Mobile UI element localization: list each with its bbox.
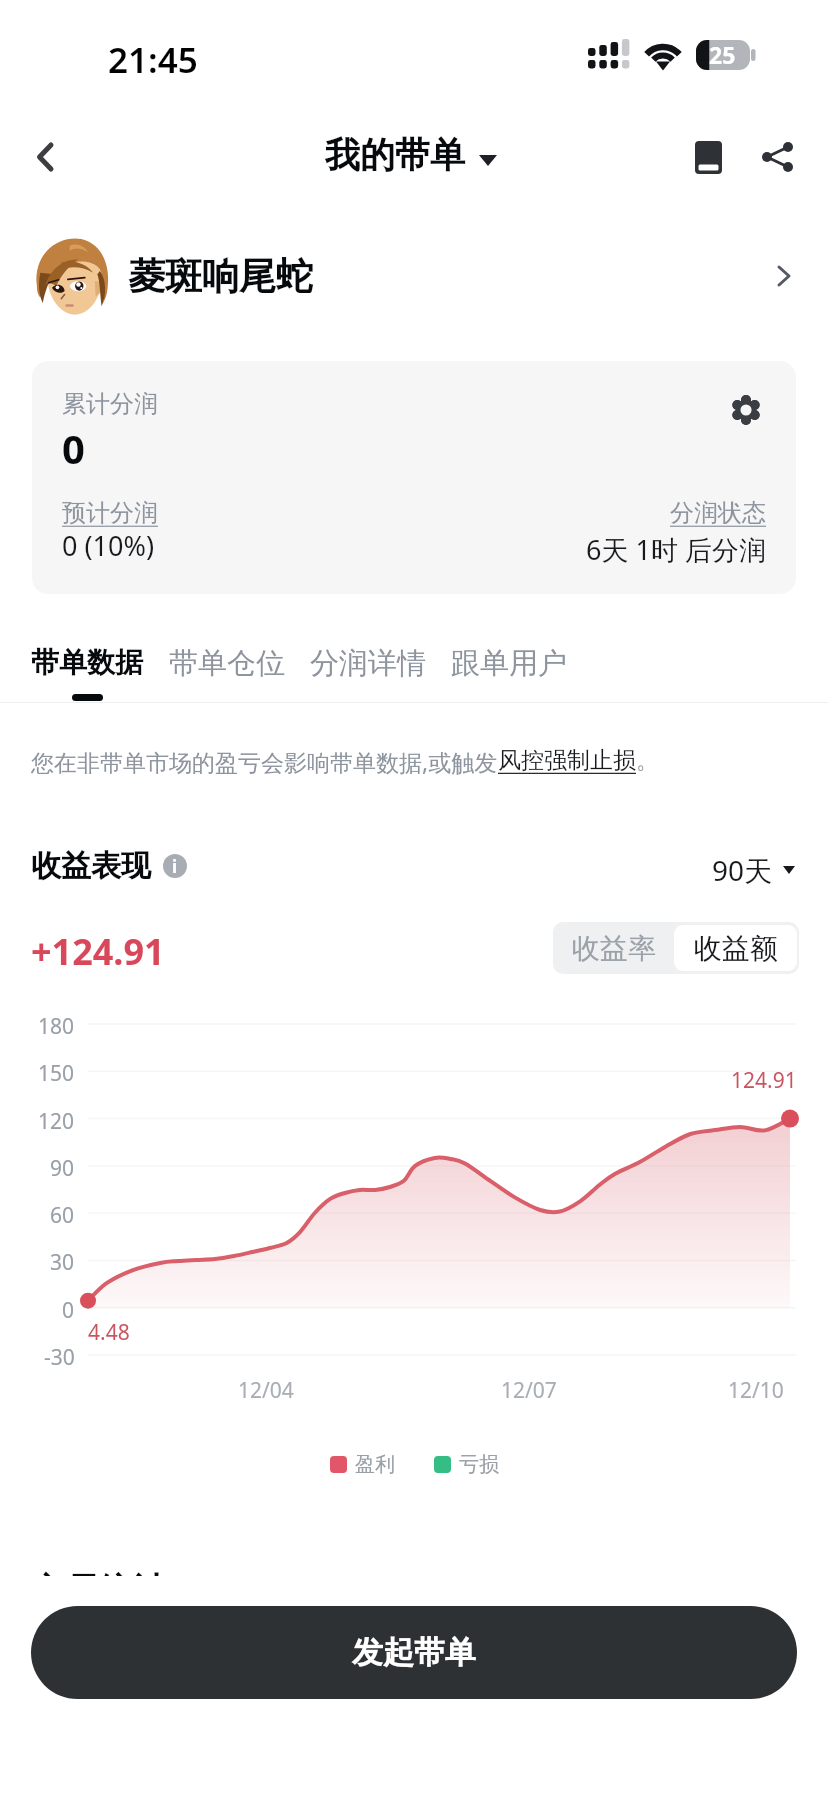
staticText: 0	[62, 1296, 75, 1325]
button[interactable]: 菱斑响尾蛇	[0, 228, 828, 324]
staticText: -30	[44, 1343, 75, 1372]
button[interactable]: 收益额	[674, 925, 797, 971]
staticText: 交易统计	[31, 1569, 167, 1576]
staticText: 12/07	[501, 1376, 557, 1405]
staticText: 12/10	[728, 1376, 784, 1405]
button[interactable]: Guide	[679, 128, 737, 186]
staticText: 盈利	[355, 1452, 395, 1477]
staticText: 风控强制止损	[498, 746, 636, 775]
button[interactable]: 跟单用户	[451, 645, 567, 703]
staticText: 跟单用户	[451, 645, 567, 682]
staticText: 120	[38, 1107, 75, 1136]
staticText: 4.48	[88, 1318, 130, 1347]
button[interactable]: 发起带单	[31, 1606, 797, 1699]
staticText: 带单数据	[31, 645, 143, 680]
button[interactable]: 我的带单	[325, 133, 497, 177]
staticText: 分润状态	[670, 498, 766, 528]
staticText: 90天	[712, 851, 773, 889]
button[interactable]: 收益率	[553, 922, 674, 974]
button[interactable]: Back	[18, 128, 76, 186]
button[interactable]: 分润详情	[310, 645, 426, 703]
staticText: 收益额	[694, 931, 778, 966]
staticText: 分润详情	[310, 645, 426, 682]
staticText: 预计分润	[62, 498, 158, 528]
staticText: 21:45	[108, 36, 198, 84]
staticText: i	[172, 855, 178, 878]
staticText: 150	[38, 1059, 75, 1088]
staticText: 收益表现	[31, 847, 151, 885]
staticText: 累计分润	[62, 389, 158, 419]
staticText: 您在非带单市场的盈亏会影响带单数据,或触发	[31, 746, 498, 777]
staticText: 0	[62, 421, 85, 475]
staticText: 30	[50, 1248, 75, 1277]
staticText: 我的带单	[325, 133, 465, 177]
staticText: 180	[38, 1012, 75, 1041]
staticText: 菱斑响尾蛇	[128, 253, 313, 300]
staticText: 0 (10%)	[62, 527, 154, 564]
staticText: 124.91	[731, 1066, 797, 1095]
button[interactable]: 90天	[712, 851, 795, 889]
button[interactable]: 带单数据	[31, 645, 143, 701]
staticText: 60	[50, 1201, 75, 1230]
staticText: 6天 1时 后分润	[586, 531, 766, 568]
button[interactable]: Share	[749, 128, 807, 186]
button[interactable]: Settings	[718, 382, 774, 438]
staticText: 。	[636, 746, 659, 775]
staticText: 发起带单	[352, 1633, 476, 1672]
staticText: 90	[50, 1154, 75, 1183]
staticText: 收益率	[572, 931, 656, 966]
staticText: 25	[709, 39, 736, 69]
staticText: +124.91	[31, 927, 165, 976]
button[interactable]: 带单仓位	[169, 645, 285, 703]
staticText: 带单仓位	[169, 645, 285, 682]
staticText: 12/04	[238, 1376, 294, 1405]
button[interactable]: Info	[163, 854, 187, 878]
staticText: 亏损	[459, 1452, 499, 1477]
